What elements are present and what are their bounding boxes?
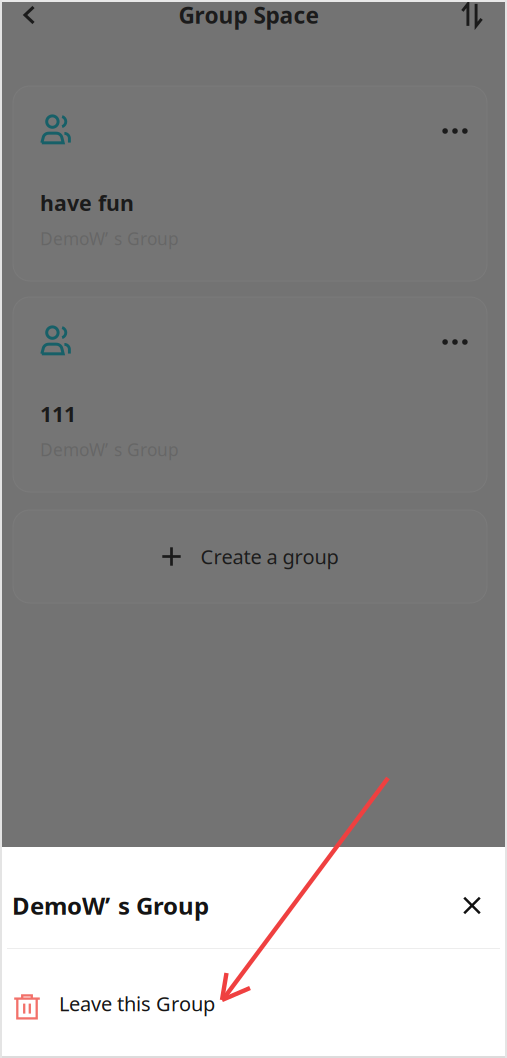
button[interactable]: have fun <box>13 86 487 281</box>
button[interactable]: Sort <box>454 0 490 31</box>
staticText: DemoW’ s Group <box>40 227 179 250</box>
staticText: Group Space <box>178 0 319 30</box>
button[interactable]: 111 <box>13 297 487 492</box>
staticText: have fun <box>40 189 134 217</box>
staticText: 111 <box>40 400 76 428</box>
button[interactable]: Back <box>11 0 47 31</box>
button[interactable]: Leave this Group <box>0 949 507 1058</box>
staticText: Create a group <box>200 543 338 570</box>
button[interactable]: Create a group <box>13 510 487 603</box>
button[interactable]: Close <box>452 885 492 925</box>
staticText: DemoW’ s Group <box>12 890 209 921</box>
staticText: Leave this Group <box>59 990 215 1017</box>
staticText: DemoW’ s Group <box>40 438 179 461</box>
